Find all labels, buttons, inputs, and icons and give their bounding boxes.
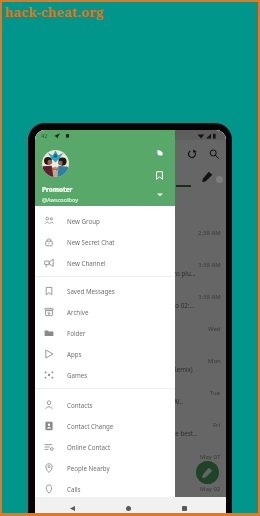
button[interactable]: Games bbox=[35, 364, 175, 385]
staticText: Contact name bbox=[69, 324, 116, 334]
staticText: Unread bbox=[148, 173, 171, 182]
staticText: New Channel bbox=[67, 259, 106, 267]
button[interactable]: Contact name bbox=[35, 317, 226, 349]
staticText: New Group bbox=[67, 217, 100, 225]
button[interactable]: Search bbox=[205, 145, 222, 162]
button[interactable]: Back bbox=[63, 499, 82, 513]
button[interactable]: Contact name bbox=[35, 381, 226, 413]
staticText: May 07 bbox=[200, 453, 221, 461]
staticText: Archive bbox=[67, 308, 89, 316]
staticText: Contact name bbox=[69, 388, 116, 398]
staticText: Great job bbox=[69, 461, 96, 469]
staticText: Apps bbox=[67, 350, 82, 358]
staticText: Fri bbox=[213, 421, 221, 429]
button[interactable]: Contact name bbox=[35, 413, 226, 445]
staticText: Contact name bbox=[69, 196, 116, 206]
button[interactable]: New Group bbox=[35, 210, 175, 231]
staticText: Summer Nights Song Audio (Dance Remix) bbox=[69, 365, 193, 373]
staticText: Tue bbox=[210, 389, 221, 397]
staticText: People Nearby bbox=[67, 464, 110, 472]
button[interactable]: Contact name bbox=[35, 349, 226, 381]
button[interactable]: Calls bbox=[35, 478, 175, 499]
staticText: Saved Messages bbox=[67, 287, 115, 295]
button[interactable]: Unread bbox=[143, 170, 176, 185]
staticText: 3:38 AM bbox=[198, 293, 221, 301]
staticText: hack-cheat.org bbox=[5, 3, 104, 21]
staticText: Contact name bbox=[69, 260, 116, 270]
staticText: Contacts bbox=[67, 401, 93, 409]
button[interactable]: All chats bbox=[37, 170, 73, 185]
staticText: Games bbox=[67, 371, 88, 379]
button[interactable]: People Nearby bbox=[35, 457, 175, 478]
staticText: Contact name bbox=[69, 292, 116, 302]
button[interactable]: Contact name bbox=[35, 477, 226, 509]
staticText: 42 bbox=[41, 132, 48, 139]
staticText: All chats bbox=[42, 173, 68, 182]
button[interactable]: New Channel bbox=[35, 252, 175, 273]
button[interactable]: Contact name bbox=[35, 445, 226, 477]
staticText: That movie we watched was really the bes… bbox=[69, 429, 198, 437]
staticText: Contact name bbox=[69, 356, 116, 366]
staticText: New Secret Chat bbox=[67, 238, 115, 246]
button[interactable]: Night mode bbox=[152, 146, 167, 161]
staticText: Promoter bbox=[42, 185, 73, 194]
staticText: 3:38 AM bbox=[198, 261, 221, 269]
button[interactable]: Contact name bbox=[35, 253, 226, 285]
button[interactable]: Contacts bbox=[35, 394, 175, 415]
staticText: Call me back again later from 01:00 to 0… bbox=[69, 301, 195, 309]
staticText: Welcome aboard bbox=[69, 205, 119, 213]
staticText: Contact name bbox=[69, 484, 116, 494]
button[interactable]: Contact name bbox=[35, 221, 226, 253]
staticText: I went out on the long big tour with Al.… bbox=[69, 397, 183, 405]
button[interactable]: Contact Change bbox=[35, 415, 175, 436]
staticText: Online Contact bbox=[67, 443, 111, 451]
staticText: 2:38 AM bbox=[198, 229, 221, 237]
button[interactable]: Refresh bbox=[183, 145, 200, 162]
staticText: Please send over the document xarms plu.… bbox=[69, 269, 196, 277]
staticText: Contact name bbox=[69, 420, 116, 430]
staticText: Thanks a lot bbox=[69, 493, 105, 501]
staticText: Wed bbox=[208, 325, 221, 333]
button[interactable]: Saved messages bbox=[152, 168, 167, 183]
button[interactable]: Saved Messages bbox=[35, 280, 175, 301]
button[interactable]: Contact name bbox=[35, 189, 226, 221]
staticText: Mon bbox=[208, 357, 221, 365]
button[interactable]: Profile photo bbox=[42, 150, 69, 177]
button[interactable]: Home bbox=[119, 499, 138, 513]
staticText: @Awscoolboy bbox=[42, 196, 79, 204]
staticText: May 02 bbox=[200, 485, 221, 493]
staticText: Sounds good bbox=[69, 333, 108, 341]
staticText: Folder bbox=[67, 329, 86, 337]
button[interactable]: Online Contact bbox=[35, 436, 175, 457]
button[interactable]: Folder bbox=[35, 322, 175, 343]
staticText: Calls bbox=[67, 485, 81, 493]
button[interactable]: New Secret Chat bbox=[35, 231, 175, 252]
button[interactable]: Recent apps bbox=[175, 499, 194, 513]
button[interactable]: Apps bbox=[35, 343, 175, 364]
button[interactable]: Expand accounts bbox=[152, 186, 167, 201]
button[interactable]: Compose message bbox=[196, 461, 219, 484]
staticText: See you soon bbox=[69, 237, 108, 245]
button[interactable]: Contact name bbox=[35, 285, 226, 317]
staticText: Contact Change bbox=[67, 422, 114, 430]
button[interactable]: Archive bbox=[35, 301, 175, 322]
